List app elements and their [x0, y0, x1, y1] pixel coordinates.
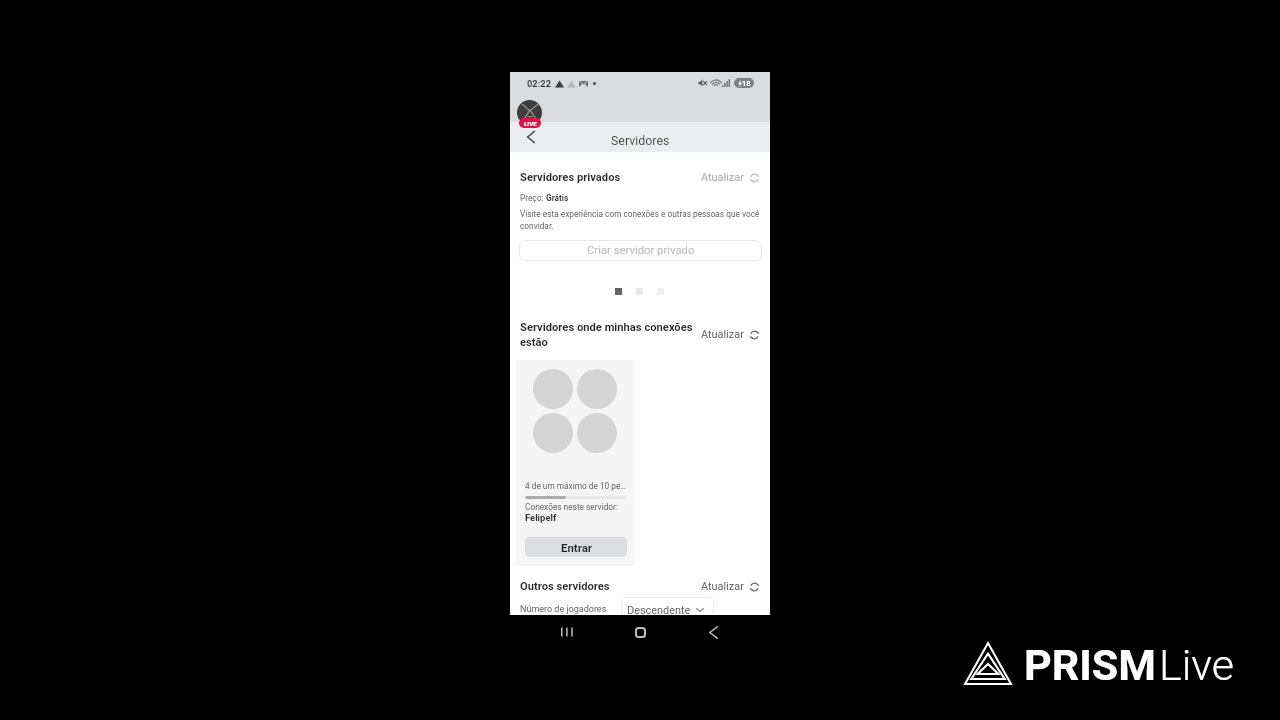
- button[interactable]: Atualizar: [701, 171, 760, 184]
- staticText: 02:22: [527, 78, 551, 89]
- staticText: Criar servidor privado: [587, 244, 695, 257]
- button[interactable]: Criar servidor privado: [519, 240, 762, 261]
- staticText: Atualizar: [701, 171, 744, 184]
- staticText: Atualizar: [701, 328, 744, 341]
- staticText: 18: [742, 79, 751, 88]
- button[interactable]: Recent apps: [543, 620, 591, 644]
- button[interactable]: 4 de um máximo de 10 pe...: [516, 360, 634, 566]
- staticText: Conexões neste servidor:: [525, 502, 618, 512]
- staticText: Visite esta experiência com conexões e o…: [520, 209, 763, 231]
- staticText: Descendente: [627, 604, 691, 615]
- staticText: Atualizar: [701, 580, 744, 593]
- button[interactable]: Entrar: [525, 537, 627, 557]
- staticText: Felipelf: [525, 512, 557, 523]
- staticText: Grátis: [546, 193, 569, 203]
- staticText: Live: [1159, 640, 1234, 690]
- button[interactable]: Home: [616, 620, 664, 644]
- staticText: Número de jogadores: [520, 604, 607, 615]
- button[interactable]: Atualizar: [701, 580, 760, 593]
- button[interactable]: Back: [520, 126, 542, 148]
- staticText: 4 de um máximo de 10 pe...: [525, 481, 626, 491]
- button[interactable]: Descendente: [621, 597, 714, 615]
- staticText: Preço:: [520, 193, 546, 203]
- button[interactable]: Back: [689, 620, 737, 644]
- staticText: Servidores: [611, 133, 670, 148]
- button[interactable]: Atualizar: [701, 328, 760, 341]
- staticText: Entrar: [561, 541, 592, 554]
- staticText: Servidores privados: [520, 171, 621, 184]
- staticText: LIVE: [524, 120, 537, 127]
- staticText: Servidores onde minhas conexões estão: [520, 321, 696, 348]
- staticText: PRISM: [1024, 640, 1156, 690]
- button[interactable]: Profile: [517, 100, 542, 125]
- staticText: Outros servidores: [520, 580, 610, 593]
